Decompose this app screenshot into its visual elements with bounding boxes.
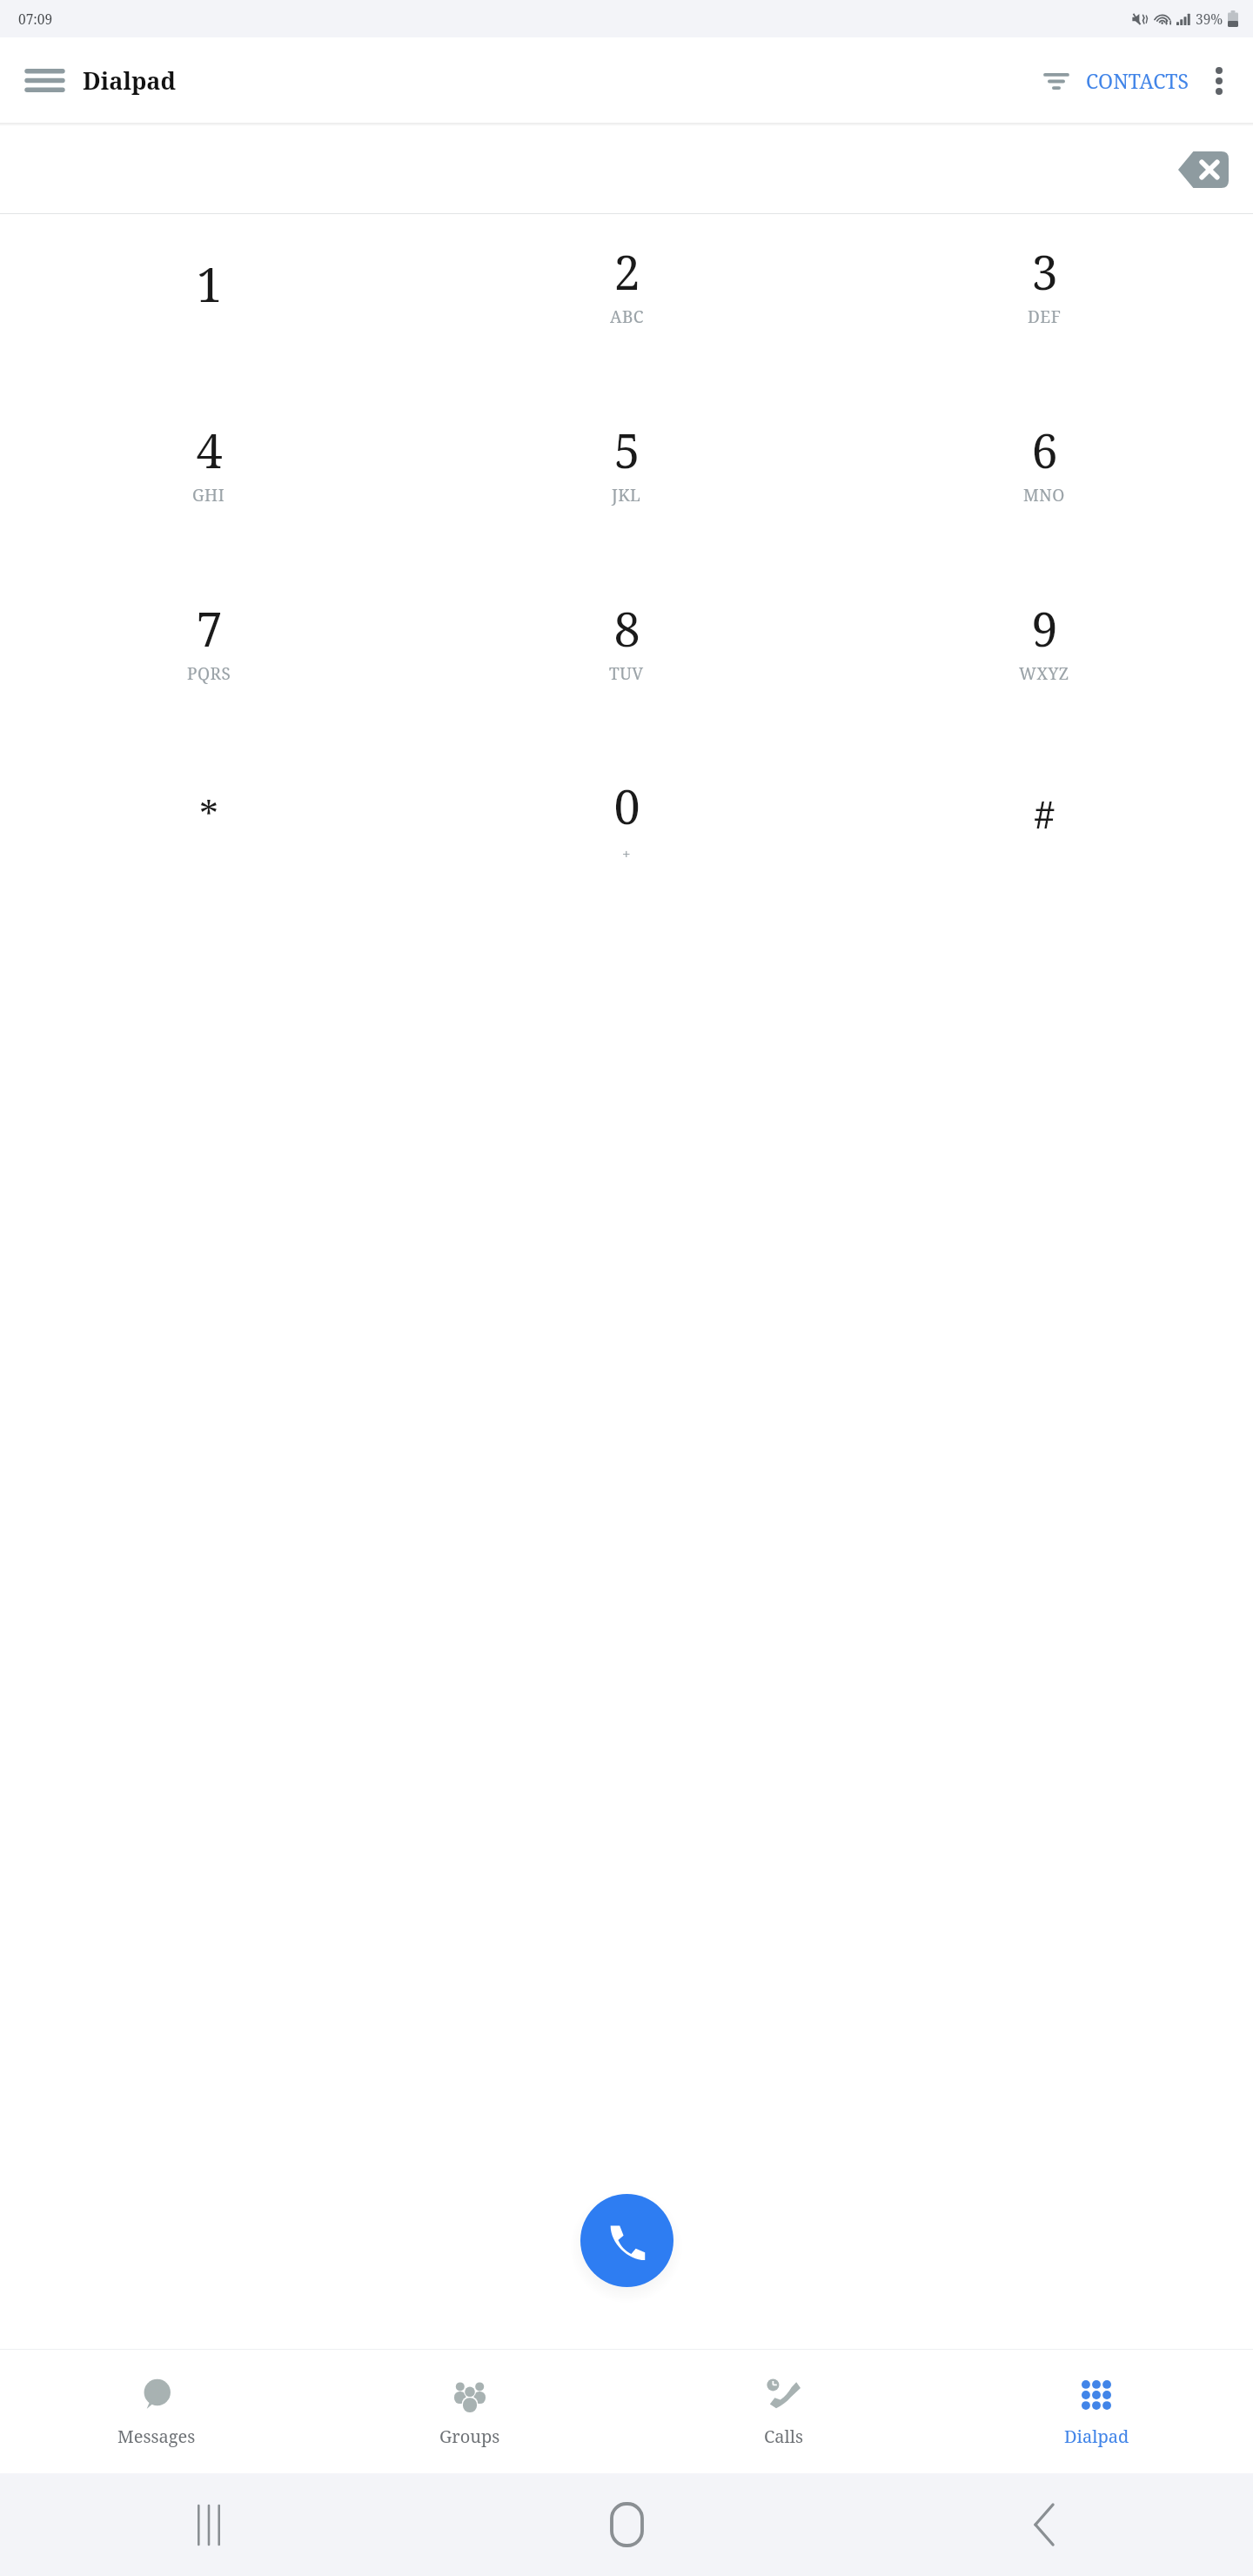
staticText: Calls [764,2425,803,2448]
staticText: * [199,788,218,840]
staticText: 07:09 [18,10,53,28]
button[interactable]: CONTACTS [1079,57,1196,104]
button[interactable]: 5 [418,415,835,508]
staticText: 8 [613,596,640,661]
staticText: 2 [613,239,640,304]
staticText: PQRS [187,662,231,685]
button[interactable]: Back [835,2473,1253,2576]
button[interactable]: * [0,772,418,865]
button[interactable]: Home [418,2473,835,2576]
staticText: TUV [609,662,644,685]
button[interactable]: 8 [418,594,835,687]
button[interactable]: Filter [1034,58,1079,104]
staticText: 7 [196,596,223,661]
button[interactable]: 1 [0,237,418,330]
staticText: GHI [192,484,225,506]
staticText: 0 [613,774,640,838]
staticText: JKL [612,484,641,506]
button[interactable]: Calls [626,2350,940,2473]
button[interactable]: 4 [0,415,418,508]
button[interactable]: Backspace [1171,143,1236,197]
staticText: 39% [1196,10,1223,28]
button[interactable]: More options [1196,57,1243,104]
button[interactable]: Dialpad [940,2350,1253,2473]
staticText: ABC [610,305,644,328]
staticText: DEF [1028,305,1062,328]
staticText: WXYZ [1019,662,1069,685]
staticText: Dialpad [1064,2425,1129,2448]
button[interactable]: Messages [0,2350,313,2473]
staticText: CONTACTS [1086,67,1189,94]
staticText: 6 [1031,418,1058,482]
staticText: 9 [1031,596,1058,661]
staticText: 3 [1031,239,1058,304]
button[interactable]: Recents [0,2473,418,2576]
button[interactable]: 2 [418,237,835,330]
staticText: # [1034,788,1055,840]
staticText: 5 [613,418,640,482]
staticText: Dialpad [83,64,177,97]
button[interactable]: Call [580,2194,673,2287]
staticText: 4 [196,418,223,482]
staticText: Groups [439,2425,500,2448]
staticText: MNO [1023,484,1065,506]
staticText: Messages [117,2425,196,2448]
button[interactable]: 7 [0,594,418,687]
button[interactable]: 0 [418,772,835,865]
button[interactable]: # [835,772,1253,865]
button[interactable]: 6 [835,415,1253,508]
button[interactable]: 9 [835,594,1253,687]
button[interactable]: 3 [835,237,1253,330]
staticText: 1 [196,252,223,316]
staticText: + [622,843,632,863]
button[interactable]: Menu [19,55,70,105]
button[interactable]: Groups [313,2350,626,2473]
